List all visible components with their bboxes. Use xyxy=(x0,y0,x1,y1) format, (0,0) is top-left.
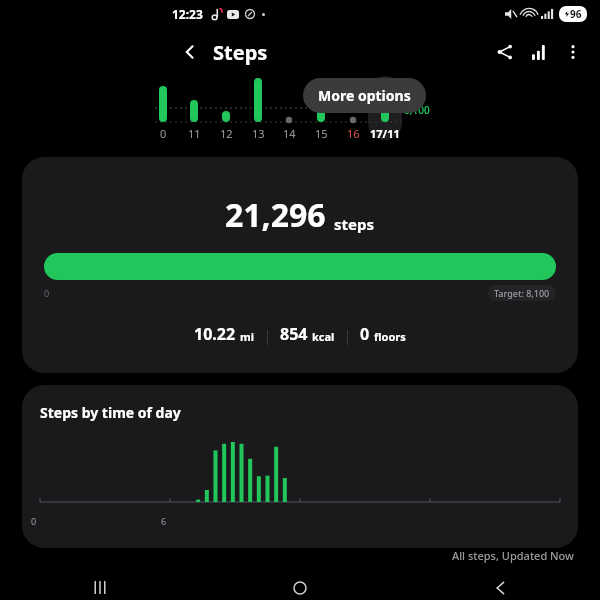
button[interactable]: 16 xyxy=(335,126,371,141)
button[interactable]: 11 xyxy=(176,126,212,141)
button[interactable]: 14 xyxy=(271,126,307,141)
staticText: 13 xyxy=(252,126,265,141)
button[interactable]: More options xyxy=(303,78,426,113)
staticText: 14 xyxy=(283,126,296,141)
staticText: floors xyxy=(374,329,406,344)
button[interactable]: Share xyxy=(488,35,522,69)
staticText: 0 xyxy=(44,287,50,299)
staticText: Steps by time of day xyxy=(40,403,181,422)
staticText: 854 xyxy=(280,323,308,345)
staticText: Steps xyxy=(213,39,268,66)
staticText: 0 xyxy=(160,126,167,141)
staticText: 10.22 xyxy=(194,323,236,345)
staticText: All steps, Updated Now xyxy=(0,548,574,563)
button[interactable]: 17/11 xyxy=(367,126,403,141)
staticText: 21,296 xyxy=(225,193,326,237)
button[interactable]: Back xyxy=(400,575,600,600)
staticText: 8,100 xyxy=(404,103,430,117)
staticText: Target: 8,100 xyxy=(494,287,550,299)
staticText: 96 xyxy=(570,7,582,21)
button[interactable]: 0 xyxy=(145,126,181,141)
button[interactable]: 15 xyxy=(303,126,339,141)
staticText: mi xyxy=(240,329,255,344)
button[interactable]: 21,296 xyxy=(22,157,578,373)
button[interactable]: 13 xyxy=(240,126,276,141)
button[interactable]: Home xyxy=(200,575,400,600)
button[interactable]: Steps by time of day xyxy=(22,385,578,548)
staticText: 0 xyxy=(360,323,370,345)
button[interactable]: Chart xyxy=(522,35,556,69)
staticText: 16 xyxy=(347,126,360,141)
staticText: kcal xyxy=(312,329,335,344)
staticText: 17/11 xyxy=(370,126,400,141)
staticText: 12 xyxy=(220,126,233,141)
staticText: 11 xyxy=(188,126,201,141)
staticText: More options xyxy=(318,86,411,105)
staticText: 15 xyxy=(315,126,328,141)
staticText: 12:23 xyxy=(172,6,203,22)
button[interactable]: 12 xyxy=(208,126,244,141)
button[interactable]: Recents xyxy=(0,575,200,600)
button[interactable]: More options xyxy=(556,35,590,69)
staticText: steps xyxy=(334,214,375,234)
button[interactable]: Back xyxy=(176,38,204,66)
